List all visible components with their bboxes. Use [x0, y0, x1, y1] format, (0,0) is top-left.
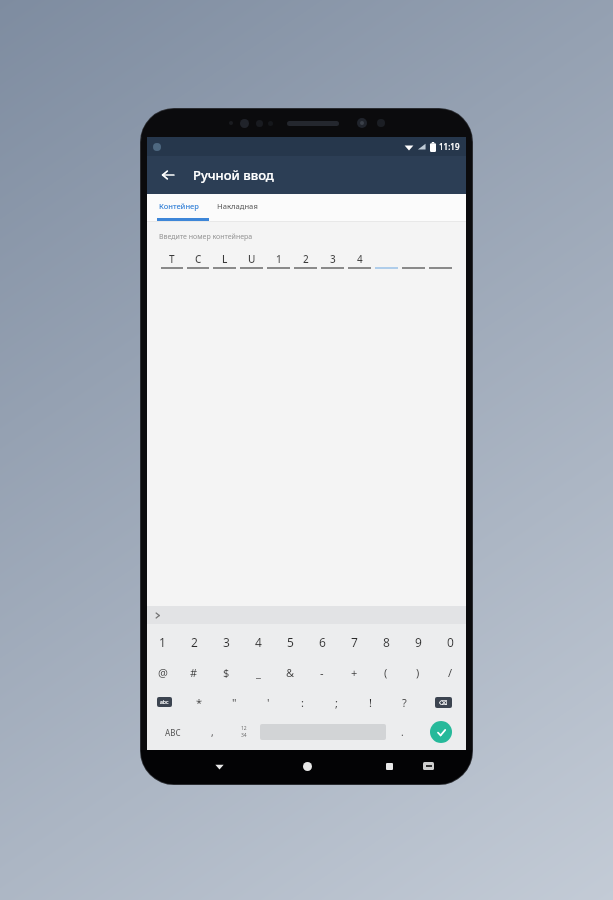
button[interactable]: &	[274, 657, 306, 687]
staticText: ABC	[165, 727, 181, 738]
staticText: _	[256, 665, 261, 680]
button[interactable]: Numbers	[228, 717, 260, 747]
button[interactable]: Контейнер	[159, 201, 199, 211]
staticText: +	[351, 665, 358, 680]
button[interactable]: "	[217, 687, 251, 717]
button[interactable]: 5	[274, 627, 306, 657]
staticText: Введите номер контейнера	[159, 232, 253, 242]
staticText: U	[248, 252, 256, 265]
button[interactable]: :	[285, 687, 319, 717]
button[interactable]: .	[386, 717, 418, 747]
staticText: Ручной ввод	[193, 166, 274, 184]
staticText: ⌫	[439, 699, 448, 706]
staticText: Накладная	[217, 201, 258, 211]
button[interactable]: _	[242, 657, 274, 687]
button[interactable]: ;	[319, 687, 353, 717]
staticText: ?	[402, 695, 407, 710]
button[interactable]: *	[182, 687, 217, 717]
staticText: 9	[415, 634, 422, 650]
staticText: 34	[241, 732, 247, 739]
button[interactable]: '	[251, 687, 285, 717]
button[interactable]: 1	[147, 627, 178, 657]
button[interactable]: Hide keyboard	[208, 755, 230, 777]
button[interactable]: Backspace	[421, 687, 466, 717]
button[interactable]: Back	[153, 160, 183, 190]
button[interactable]: 4	[348, 252, 371, 269]
button[interactable]: T	[161, 252, 183, 269]
button[interactable]: ?	[387, 687, 421, 717]
staticText: 2	[191, 634, 198, 650]
staticText: Контейнер	[159, 201, 199, 211]
button[interactable]: 0	[434, 627, 466, 657]
staticText: .	[401, 725, 404, 739]
staticText: 12	[241, 725, 247, 732]
button[interactable]: -	[306, 657, 338, 687]
staticText: !	[369, 695, 372, 710]
button[interactable]	[375, 252, 398, 269]
button[interactable]: Накладная	[217, 201, 258, 211]
button[interactable]: 8	[370, 627, 402, 657]
staticText: (	[384, 665, 388, 680]
button[interactable]: +	[338, 657, 370, 687]
button[interactable]: (	[370, 657, 402, 687]
button[interactable]: Switch keyboard	[147, 687, 182, 717]
staticText: @	[158, 665, 168, 680]
staticText: 4	[357, 252, 363, 265]
staticText: *	[196, 695, 203, 710]
staticText: abc	[160, 699, 169, 706]
staticText: ,	[211, 725, 214, 739]
button[interactable]: !	[353, 687, 387, 717]
button[interactable]: Recent apps	[378, 755, 400, 777]
button[interactable]: L	[213, 252, 236, 269]
staticText: ;	[335, 695, 338, 710]
staticText: 1	[276, 252, 282, 265]
button[interactable]: 3	[210, 627, 242, 657]
button[interactable]: 6	[306, 627, 338, 657]
button[interactable]: 9	[402, 627, 434, 657]
button[interactable]	[429, 252, 452, 269]
staticText: 5	[287, 634, 294, 650]
button[interactable]: #	[178, 657, 210, 687]
button[interactable]	[402, 252, 425, 269]
button[interactable]: ,	[197, 717, 228, 747]
staticText: 2	[303, 252, 309, 265]
staticText: #	[190, 665, 198, 680]
staticText: L	[222, 252, 228, 265]
staticText: 8	[383, 634, 390, 650]
button[interactable]: U	[240, 252, 263, 269]
button[interactable]: 7	[338, 627, 370, 657]
staticText: 3	[330, 252, 336, 265]
button[interactable]: )	[402, 657, 434, 687]
staticText: :	[301, 695, 304, 710]
button[interactable]: /	[434, 657, 466, 687]
staticText: /	[448, 665, 453, 680]
button[interactable]: 1	[267, 252, 290, 269]
button[interactable]: 4	[242, 627, 274, 657]
button[interactable]: 2	[294, 252, 317, 269]
button[interactable]: 2	[178, 627, 210, 657]
staticText: T	[169, 252, 175, 265]
button[interactable]: ABC	[149, 717, 197, 747]
staticText: 1	[159, 634, 166, 650]
staticText: "	[232, 695, 237, 710]
staticText: &	[286, 665, 295, 680]
button[interactable]: Home	[296, 755, 318, 777]
staticText: 6	[319, 634, 326, 650]
button[interactable]: $	[210, 657, 242, 687]
staticText: $	[223, 665, 230, 680]
staticText: 11:19	[439, 141, 460, 152]
button[interactable]: Done	[418, 717, 464, 747]
button[interactable]: Expand suggestions	[150, 608, 164, 622]
button[interactable]: 3	[321, 252, 344, 269]
staticText: '	[267, 695, 270, 710]
button[interactable]: Keyboard	[417, 755, 439, 777]
button[interactable]: C	[187, 252, 209, 269]
staticText: 4	[255, 634, 262, 650]
staticText: -	[320, 665, 324, 680]
staticText: 3	[223, 634, 230, 650]
staticText: )	[416, 665, 420, 680]
staticText: C	[195, 252, 202, 265]
staticText: 7	[351, 634, 358, 650]
button[interactable]: @	[147, 657, 178, 687]
